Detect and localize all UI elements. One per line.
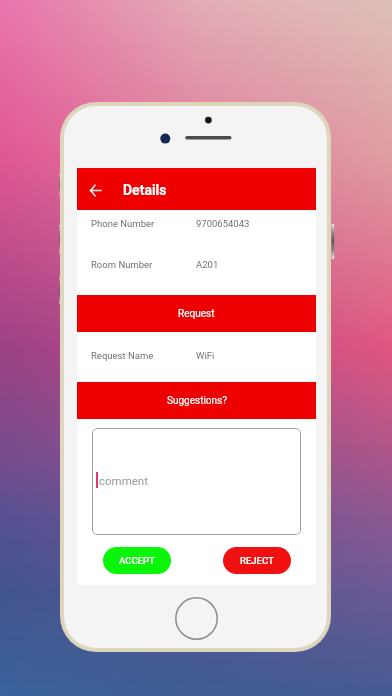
button[interactable]: Room Number xyxy=(77,259,316,270)
staticText: REJECT xyxy=(240,555,274,566)
staticText: Request xyxy=(178,308,215,320)
button[interactable]: comment xyxy=(92,428,301,535)
staticText: Details xyxy=(123,182,167,198)
staticText: A201 xyxy=(196,259,219,270)
staticText: comment xyxy=(99,474,148,487)
button[interactable]: REJECT xyxy=(223,547,291,574)
button[interactable]: Request Name xyxy=(77,350,316,361)
button[interactable]: ACCEPT xyxy=(103,547,171,574)
button[interactable]: Back xyxy=(82,177,108,203)
staticText: ACCEPT xyxy=(119,555,155,566)
staticText: Room Number xyxy=(91,259,153,270)
button[interactable]: Suggestions? xyxy=(77,382,316,419)
staticText: 9700654043 xyxy=(196,218,250,229)
button[interactable]: Phone Number xyxy=(77,218,316,229)
button[interactable]: Request xyxy=(77,295,316,332)
staticText: Request Name xyxy=(91,350,154,361)
staticText: Phone Number xyxy=(91,218,155,229)
staticText: WiFi xyxy=(196,350,215,361)
staticText: Suggestions? xyxy=(167,395,227,407)
